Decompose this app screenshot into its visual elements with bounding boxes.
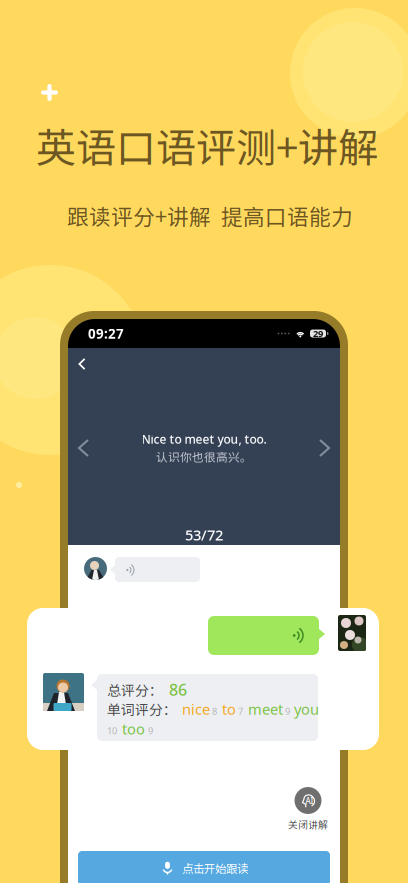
button[interactable]: AI xyxy=(288,787,328,831)
staticText: 7 xyxy=(238,705,243,717)
staticText: 点击开始跟读 xyxy=(182,860,248,876)
staticText: too xyxy=(122,719,145,738)
staticText: to xyxy=(222,699,236,719)
staticText: 单词评分： xyxy=(107,699,177,719)
staticText: meet xyxy=(248,699,283,719)
staticText: Nice to meet you, too. xyxy=(141,431,266,447)
staticText: AI xyxy=(305,795,313,806)
staticText: 英语口语评测+讲解 xyxy=(36,116,378,174)
staticText: 8 xyxy=(212,705,217,717)
staticText: 9 xyxy=(148,724,153,737)
staticText: 总评分： xyxy=(107,680,163,700)
staticText: 86 xyxy=(169,679,187,700)
staticText: 29 xyxy=(313,327,323,340)
staticText: 9 xyxy=(285,705,290,717)
button[interactable]: 点击开始跟读 xyxy=(78,851,330,883)
button[interactable]: Next sentence xyxy=(309,430,340,466)
staticText: 53/72 xyxy=(185,525,223,544)
button[interactable]: Back xyxy=(68,350,96,378)
button[interactable]: Previous sentence xyxy=(68,430,99,466)
staticText: 认识你也很高兴。 xyxy=(156,448,252,465)
staticText: 09:27 xyxy=(88,325,124,342)
staticText: you xyxy=(294,699,319,719)
staticText: 跟读评分+讲解 提高口语能力 xyxy=(67,200,353,231)
staticText: nice xyxy=(182,699,210,719)
staticText: 10 xyxy=(107,724,117,737)
staticText: 关闭讲解 xyxy=(288,817,328,831)
